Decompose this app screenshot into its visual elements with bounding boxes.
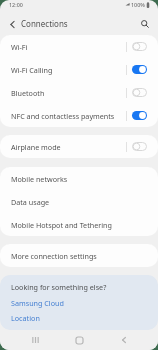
button[interactable]: Recent apps xyxy=(25,330,45,350)
button[interactable]: Turn on xyxy=(132,42,147,51)
button[interactable]: Airplane mode xyxy=(0,135,158,158)
button[interactable]: Turn off xyxy=(132,111,147,120)
button[interactable]: Navigate up xyxy=(5,17,19,31)
button[interactable]: Mobile Hotspot and Tethering xyxy=(0,213,158,236)
staticText: Connections xyxy=(21,18,68,29)
button[interactable]: Location xyxy=(11,313,40,323)
staticText: Bluetooth xyxy=(11,88,126,98)
staticText: Mobile networks xyxy=(11,174,68,184)
button[interactable]: Samsung Cloud xyxy=(11,298,64,308)
button[interactable]: Home xyxy=(69,330,89,350)
button[interactable]: More connection settings xyxy=(0,244,158,267)
staticText: Data usage xyxy=(11,197,50,207)
staticText: Wi-Fi xyxy=(11,42,126,52)
staticText: Looking for something else? xyxy=(11,282,107,292)
button[interactable]: Wi-Fi Calling xyxy=(0,58,158,81)
button[interactable]: Bluetooth xyxy=(0,81,158,104)
button[interactable]: Turn off xyxy=(132,65,147,74)
button[interactable]: Mobile networks xyxy=(0,167,158,190)
staticText: More connection settings xyxy=(11,251,97,261)
staticText: Wi-Fi Calling xyxy=(11,65,126,75)
staticText: 12:00 xyxy=(9,1,23,8)
button[interactable]: Back xyxy=(114,330,134,350)
staticText: Mobile Hotspot and Tethering xyxy=(11,220,112,230)
button[interactable]: Data usage xyxy=(0,190,158,213)
staticText: Airplane mode xyxy=(11,142,126,152)
button[interactable]: Search xyxy=(138,17,152,31)
button[interactable]: Turn on xyxy=(132,88,147,97)
staticText: 100% xyxy=(131,1,145,8)
button[interactable]: Wi-Fi xyxy=(0,35,158,58)
button[interactable]: Turn on xyxy=(132,142,147,151)
button[interactable]: NFC and contactless payments xyxy=(0,104,158,127)
staticText: NFC and contactless payments xyxy=(11,111,126,121)
